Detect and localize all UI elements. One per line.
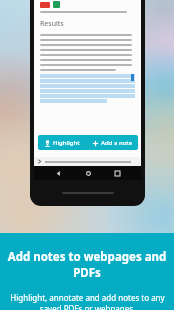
- staticText: Add notes to webpages and PDFs: [0, 249, 174, 281]
- staticText: Highlight: [53, 139, 80, 147]
- staticText: Results: [40, 19, 64, 29]
- button[interactable]: PDF document: [40, 2, 50, 8]
- button[interactable]: Home: [82, 167, 94, 179]
- button[interactable]: Recent apps: [111, 167, 123, 179]
- button[interactable]: Expand note: [34, 157, 141, 166]
- button[interactable]: Highlight: [41, 139, 83, 147]
- staticText: Highlight, annotate and add notes to any…: [10, 292, 165, 310]
- button[interactable]: Open in app: [53, 1, 60, 8]
- staticText: Add a note: [101, 139, 133, 147]
- button[interactable]: Add a note: [89, 139, 136, 147]
- button[interactable]: Back: [52, 167, 64, 179]
